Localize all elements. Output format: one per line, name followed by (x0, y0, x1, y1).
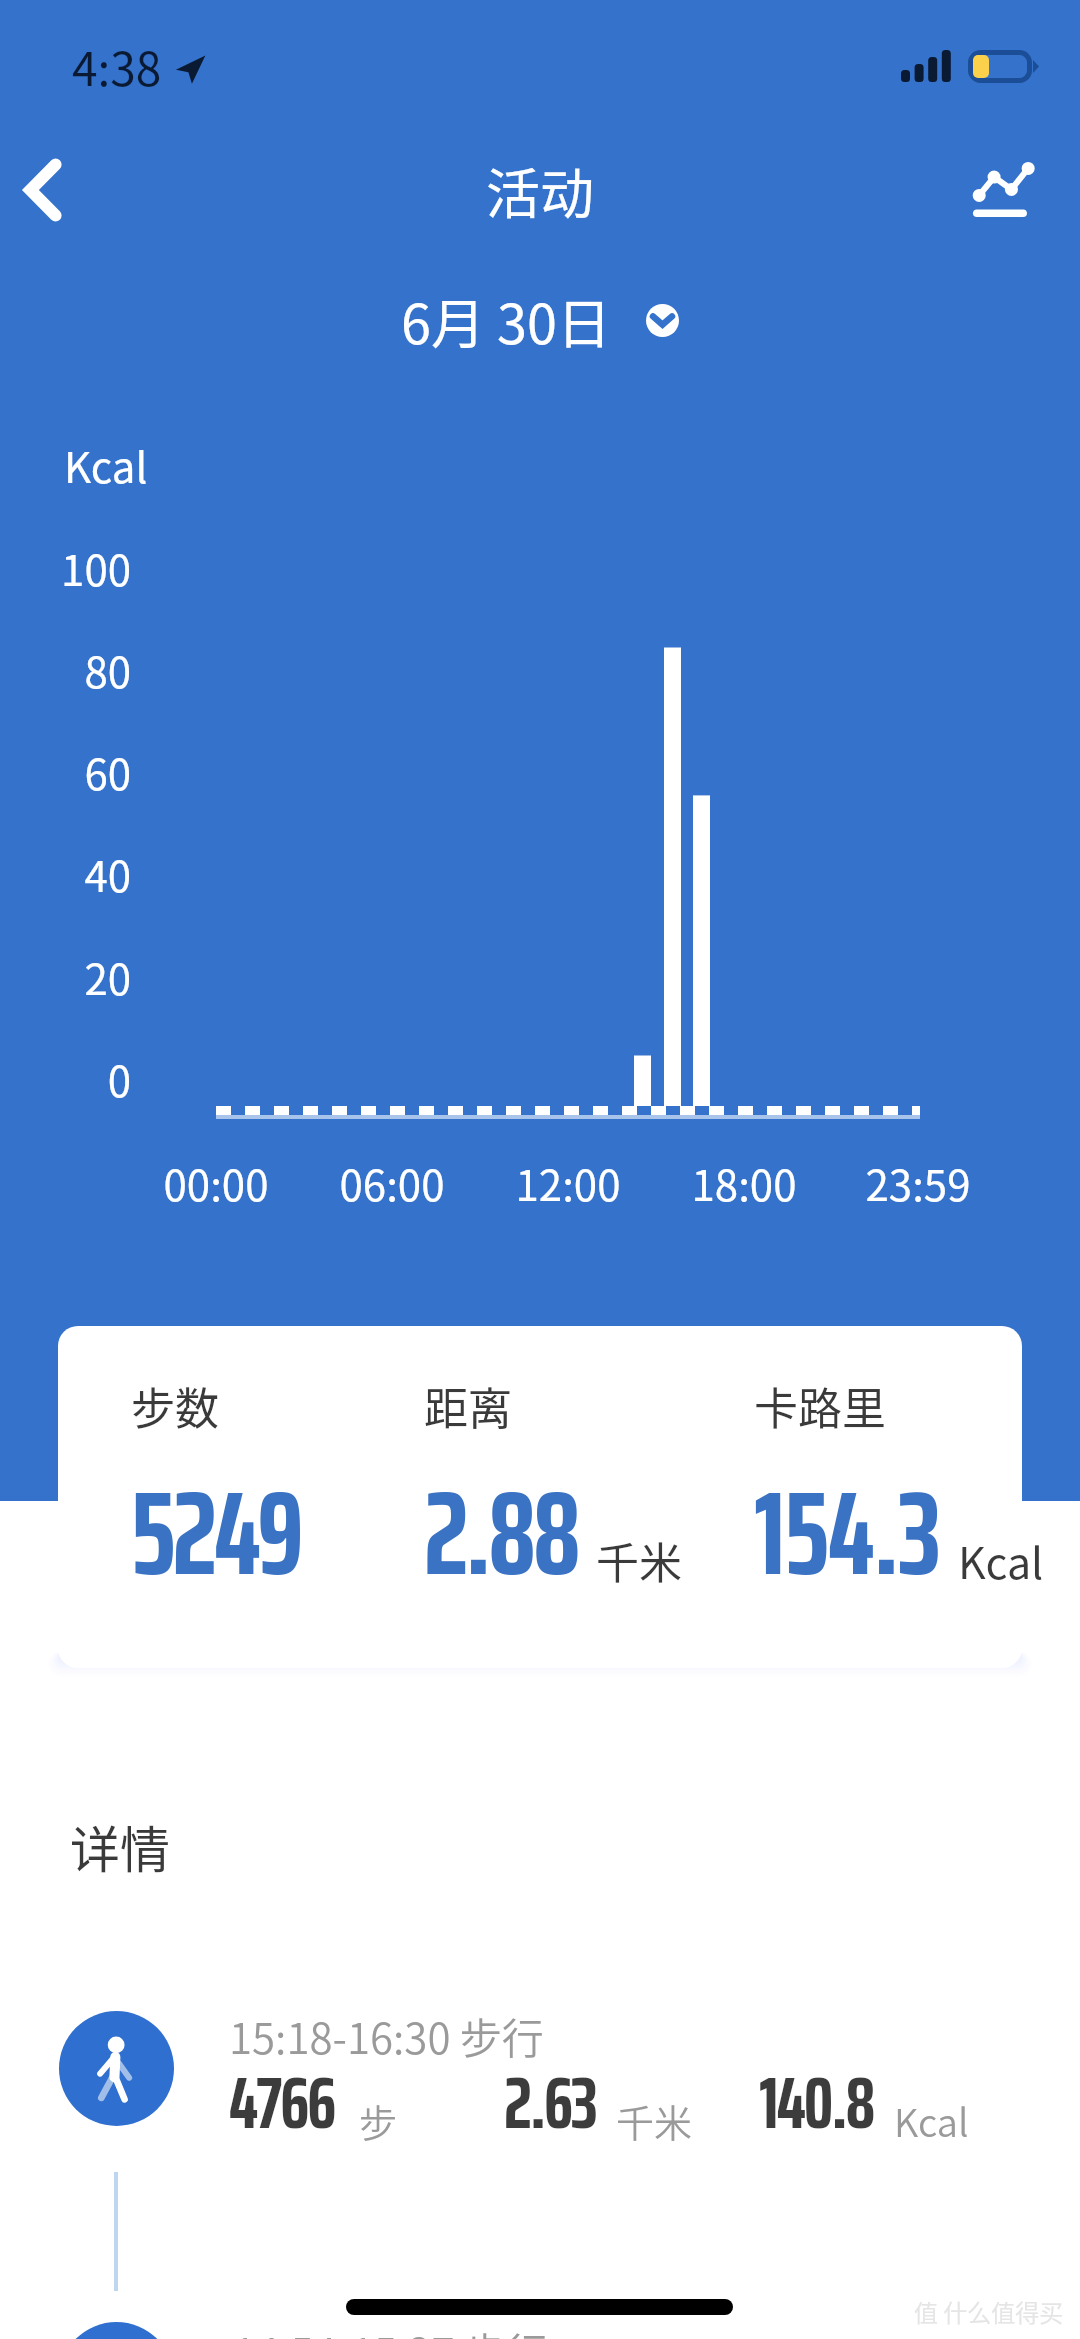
button[interactable]: 15:18-16:30 步行 4766 步 (40, 1990, 1040, 2160)
button[interactable]: 6月 30日 (393, 273, 687, 367)
staticText: 5249 (131, 1440, 301, 1626)
staticText: Kcal (64, 434, 148, 495)
staticText: 40 (0, 843, 131, 904)
staticText: 154.3 (754, 1440, 940, 1626)
staticText: 20 (0, 946, 131, 1007)
button[interactable]: Back (0, 130, 103, 250)
staticText: 2.63 (504, 2044, 596, 2160)
staticText: 2.88 (424, 1440, 578, 1626)
staticText: 6月 30日 (401, 281, 612, 359)
staticText: 值 什么值得买 (914, 2294, 1064, 2329)
staticText: 80 (0, 639, 131, 700)
staticText: 14:54-15:27 步行 (233, 2320, 548, 2339)
staticText: 18:00 (634, 1152, 854, 1213)
staticText: 60 (0, 741, 131, 802)
staticText: 0 (0, 1048, 131, 1109)
staticText: 活动 (486, 151, 594, 229)
staticText: 千米 (616, 2093, 693, 2148)
staticText: 距离 (424, 1374, 512, 1438)
staticText: 4766 (229, 2044, 335, 2160)
staticText: 4:38 (72, 33, 162, 100)
staticText: 140.8 (759, 2044, 874, 2160)
staticText: 详情 (70, 1810, 170, 1882)
staticText: 千米 (596, 1529, 682, 1591)
button[interactable]: Statistics (944, 130, 1064, 250)
staticText: 步 (359, 2093, 398, 2148)
staticText: 06:00 (282, 1152, 502, 1213)
staticText: 卡路里 (754, 1374, 886, 1438)
staticText: 23:59 (808, 1152, 1028, 1213)
button[interactable] (58, 1326, 1022, 1668)
staticText: 步数 (131, 1374, 219, 1438)
staticText: Kcal (894, 2093, 969, 2148)
staticText: 12:00 (458, 1152, 678, 1213)
staticText: Kcal (958, 1529, 1044, 1591)
staticText: 00:00 (106, 1152, 326, 1213)
staticText: 15:18-16:30 步行 (229, 2005, 544, 2066)
staticText: 100 (0, 537, 131, 598)
